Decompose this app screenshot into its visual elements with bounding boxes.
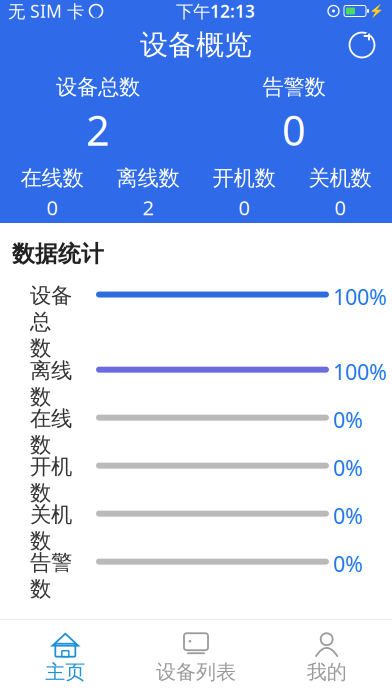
staticText: 0% [333, 406, 363, 434]
staticText: 主页 [45, 660, 85, 684]
staticText: 100% [333, 358, 387, 386]
staticText: 2 [86, 102, 110, 157]
staticText: 我的 [307, 660, 347, 684]
staticText: 设备总数 [56, 74, 140, 100]
staticText: 100% [333, 282, 387, 311]
staticText: 数据统计 [12, 240, 104, 268]
button[interactable]: 我的 [261, 620, 392, 696]
staticText: 告警数 [262, 74, 325, 100]
staticText: 0 [238, 194, 249, 221]
staticText: 无 SIM 卡 [8, 0, 84, 22]
staticText: 离线数 [30, 358, 72, 410]
button[interactable]: 刷新 [340, 23, 384, 67]
staticText: 0% [333, 550, 363, 578]
staticText: 0% [333, 502, 363, 530]
staticText: 0 [334, 194, 345, 221]
staticText: 在线数 [20, 165, 83, 191]
staticText: 0% [333, 454, 363, 482]
staticText: 开机数 [212, 165, 275, 191]
staticText: 设备总 [30, 282, 72, 335]
staticText: 在线数 [30, 406, 72, 458]
staticText: 数 [30, 335, 51, 361]
staticText: ⚡ [369, 4, 384, 18]
button[interactable]: 主页 [0, 620, 131, 696]
staticText: 关机数 [308, 165, 371, 191]
staticText: 2 [142, 194, 153, 221]
staticText: 0 [282, 102, 306, 157]
staticText: 关机数 [30, 502, 72, 554]
staticText: 告警数 [30, 550, 72, 602]
staticText: 设备概览 [140, 28, 252, 62]
staticText: 下午12:13 [176, 0, 255, 22]
staticText: 设备列表 [156, 660, 236, 684]
staticText: 开机数 [30, 454, 72, 506]
staticText: 0 [46, 194, 57, 221]
button[interactable]: 设备列表 [131, 620, 261, 696]
staticText: 离线数 [116, 165, 179, 191]
